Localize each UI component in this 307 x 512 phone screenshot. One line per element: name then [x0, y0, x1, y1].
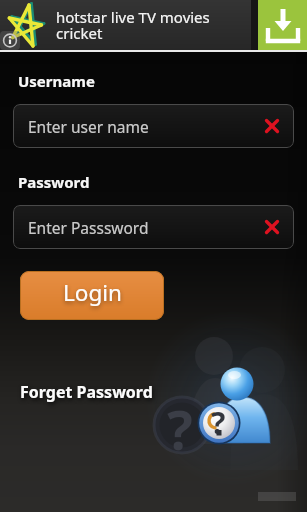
staticText: Username [18, 71, 95, 91]
button[interactable] [258, 0, 307, 50]
staticText: Password [18, 172, 90, 192]
staticText: Enter user name [28, 116, 149, 137]
button[interactable]: Forget Password [20, 381, 153, 403]
button[interactable]: Enter Passsword [13, 205, 294, 249]
button[interactable]: Login [20, 271, 164, 320]
staticText: Login [63, 277, 122, 308]
staticText: ? [211, 402, 226, 443]
button[interactable]: Enter user name [13, 104, 294, 148]
staticText: ? [167, 392, 193, 466]
staticText: hotstar live TV movies cricket [56, 7, 210, 43]
staticText: Enter Passsword [28, 217, 149, 238]
